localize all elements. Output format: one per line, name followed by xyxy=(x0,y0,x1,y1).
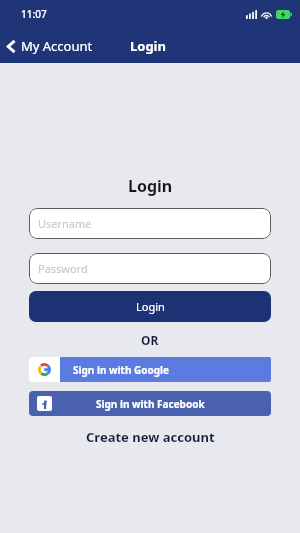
button[interactable]: Login xyxy=(29,291,271,322)
staticText: 11:07 xyxy=(21,7,47,21)
staticText: Login xyxy=(136,299,165,314)
button[interactable]: Sign in with Google xyxy=(29,357,271,382)
button[interactable]: Password xyxy=(29,253,271,284)
button[interactable]: Username xyxy=(29,208,271,239)
staticText: Username xyxy=(38,216,92,231)
button[interactable]: Create new account xyxy=(80,426,221,448)
staticText: Create new account xyxy=(86,428,215,446)
button[interactable]: Login xyxy=(126,34,170,58)
staticText: Login xyxy=(128,175,173,197)
staticText: Password xyxy=(38,261,88,276)
staticText: Login xyxy=(130,37,166,55)
button[interactable]: Back xyxy=(0,33,99,59)
staticText: Sign in with Facebook xyxy=(96,397,205,411)
other: Back xyxy=(6,39,17,54)
staticText: OR xyxy=(141,332,159,348)
staticText: My Account xyxy=(21,37,93,55)
button[interactable]: Sign in with Facebook xyxy=(29,391,271,416)
staticText: Sign in with Google xyxy=(73,363,170,377)
